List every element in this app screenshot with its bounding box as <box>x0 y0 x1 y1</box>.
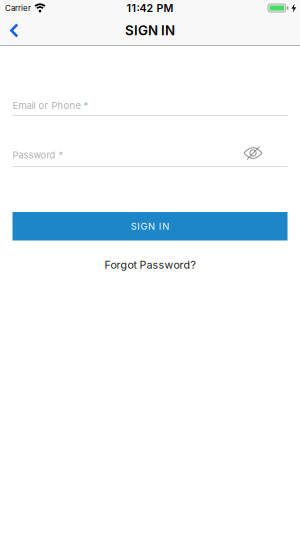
button[interactable] <box>0 17 19 44</box>
button[interactable] <box>243 146 287 160</box>
button[interactable]: Password * <box>12 148 287 167</box>
button[interactable]: Email or Phone * <box>12 100 287 116</box>
button[interactable]: SIGN IN <box>12 212 287 240</box>
staticText: Password * <box>12 149 63 160</box>
staticText: Email or Phone * <box>12 100 88 111</box>
staticText: SIGN IN <box>125 23 175 38</box>
staticText: Carrier <box>5 3 31 13</box>
staticText: SIGN IN <box>131 221 169 232</box>
button[interactable]: Forgot Password? <box>12 258 287 271</box>
staticText: Forgot Password? <box>104 258 195 271</box>
staticText: 11:42 PM <box>126 2 173 14</box>
